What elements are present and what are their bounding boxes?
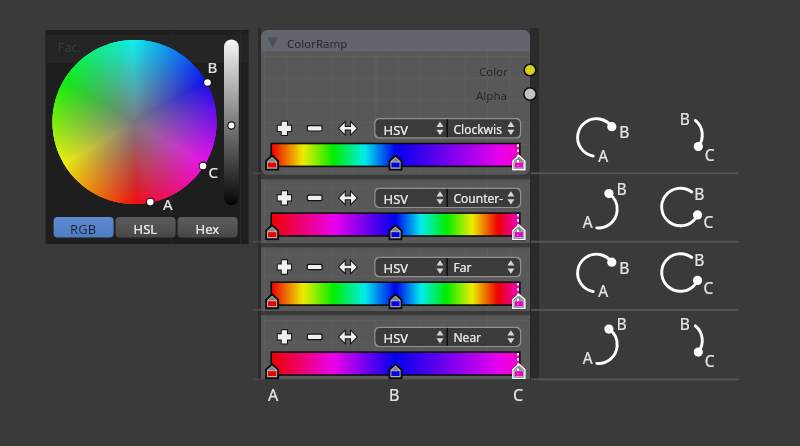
button[interactable] (0, 0, 800, 446)
